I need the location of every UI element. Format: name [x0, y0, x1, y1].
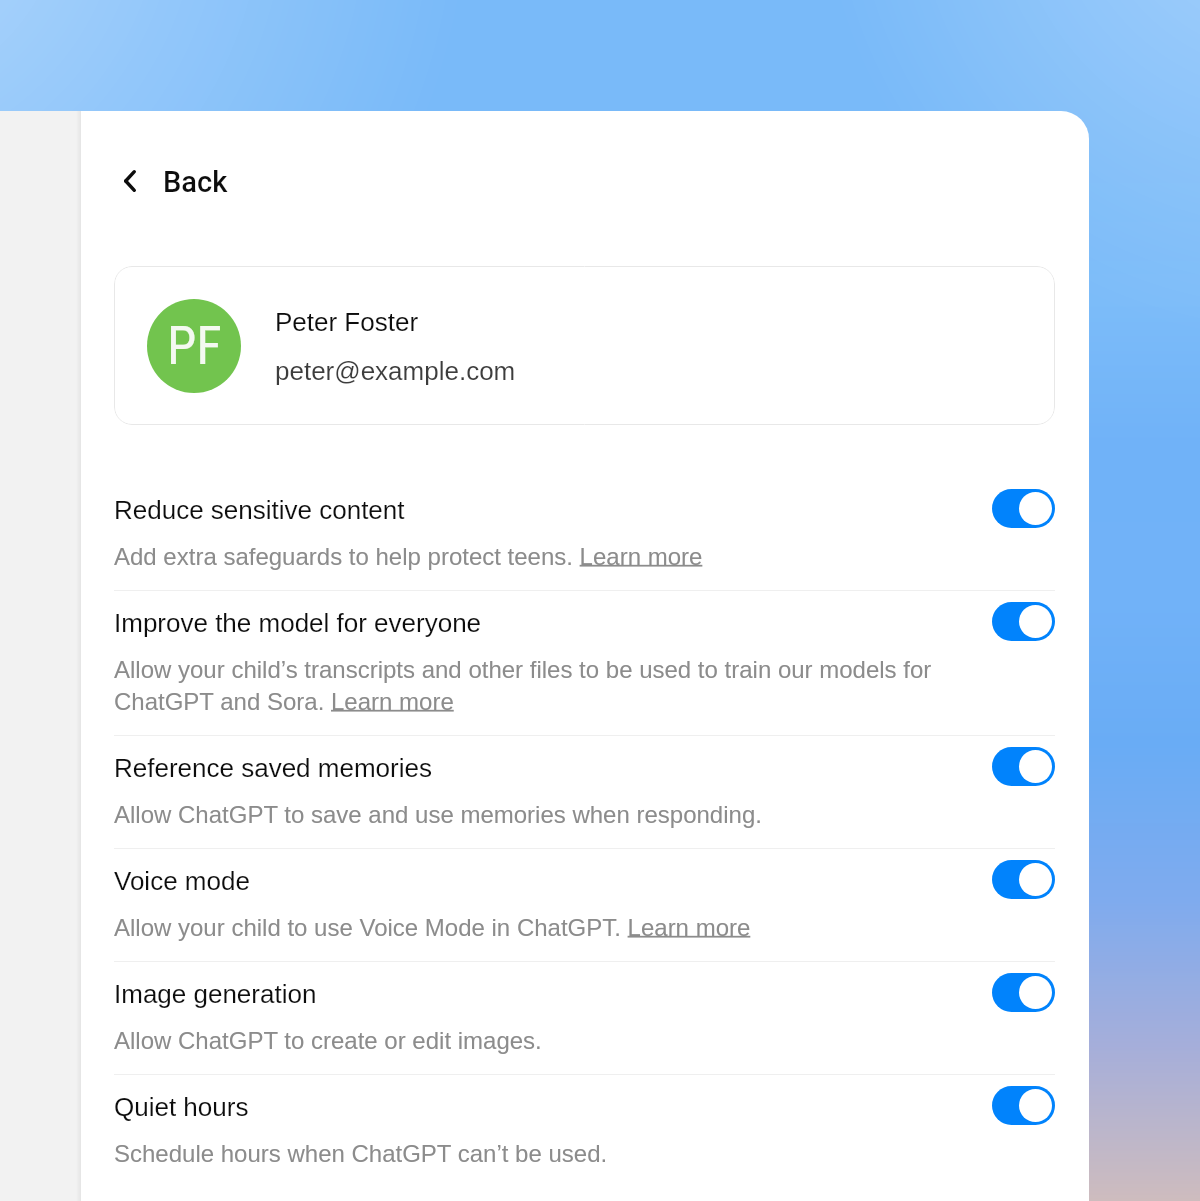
staticText: Voice mode	[114, 866, 250, 895]
staticText: peter@example.com	[275, 356, 516, 385]
button[interactable]: Reduce sensitive content	[114, 478, 1055, 590]
button[interactable]: Voice mode	[114, 849, 1055, 961]
button[interactable]: Improve the model for everyone	[114, 591, 1055, 735]
button[interactable]: Reference saved memories	[992, 747, 1055, 786]
staticText: Allow ChatGPT to create or edit images.	[114, 1027, 542, 1054]
button[interactable]: Back	[112, 155, 240, 205]
staticText: Image generation	[114, 979, 317, 1008]
staticText: Reference saved memories	[114, 753, 432, 782]
staticText: Schedule hours when ChatGPT can’t be use…	[114, 1140, 608, 1167]
staticText: Back	[163, 165, 228, 199]
button[interactable]: Quiet hours	[114, 1075, 1055, 1187]
button[interactable]: Voice mode	[992, 860, 1055, 899]
staticText: Reduce sensitive content	[114, 495, 405, 524]
button[interactable]: Reference saved memories	[114, 736, 1055, 848]
staticText: Allow your child’s transcripts and other…	[114, 656, 972, 715]
staticText: Improve the model for everyone	[114, 608, 482, 637]
button[interactable]: Improve the model for everyone	[992, 602, 1055, 641]
staticText: Allow ChatGPT to save and use memories w…	[114, 801, 762, 828]
staticText: Allow your child to use Voice Mode in Ch…	[114, 914, 751, 941]
button[interactable]: PF	[114, 266, 1055, 425]
staticText: Peter Foster	[275, 307, 419, 336]
button[interactable]: Image generation	[992, 973, 1055, 1012]
button[interactable]: Quiet hours	[992, 1086, 1055, 1125]
staticText: Add extra safeguards to help protect tee…	[114, 543, 703, 570]
staticText: Quiet hours	[114, 1092, 249, 1121]
button[interactable]: Reduce sensitive content	[992, 489, 1055, 528]
button[interactable]: Image generation	[114, 962, 1055, 1074]
staticText: PF	[167, 315, 222, 377]
